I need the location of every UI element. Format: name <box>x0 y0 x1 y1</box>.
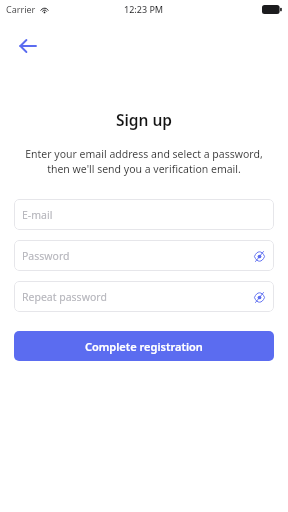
staticText: Password <box>22 249 70 263</box>
button[interactable]: E-mail <box>14 199 274 230</box>
staticText: Sign up <box>0 109 288 130</box>
button[interactable]: Show password <box>250 247 268 265</box>
button[interactable]: Repeat password <box>14 281 274 312</box>
button[interactable]: Complete registration <box>14 331 274 361</box>
button[interactable]: Show password <box>250 288 268 306</box>
staticText: 12:23 PM <box>124 3 164 15</box>
button[interactable]: Back <box>10 28 46 64</box>
staticText: Complete registration <box>85 339 203 354</box>
staticText: Repeat password <box>22 290 107 304</box>
staticText: E-mail <box>22 208 53 222</box>
staticText: Carrier <box>6 3 36 15</box>
staticText: Enter your email address and select a pa… <box>12 147 276 176</box>
button[interactable]: Password <box>14 240 274 271</box>
